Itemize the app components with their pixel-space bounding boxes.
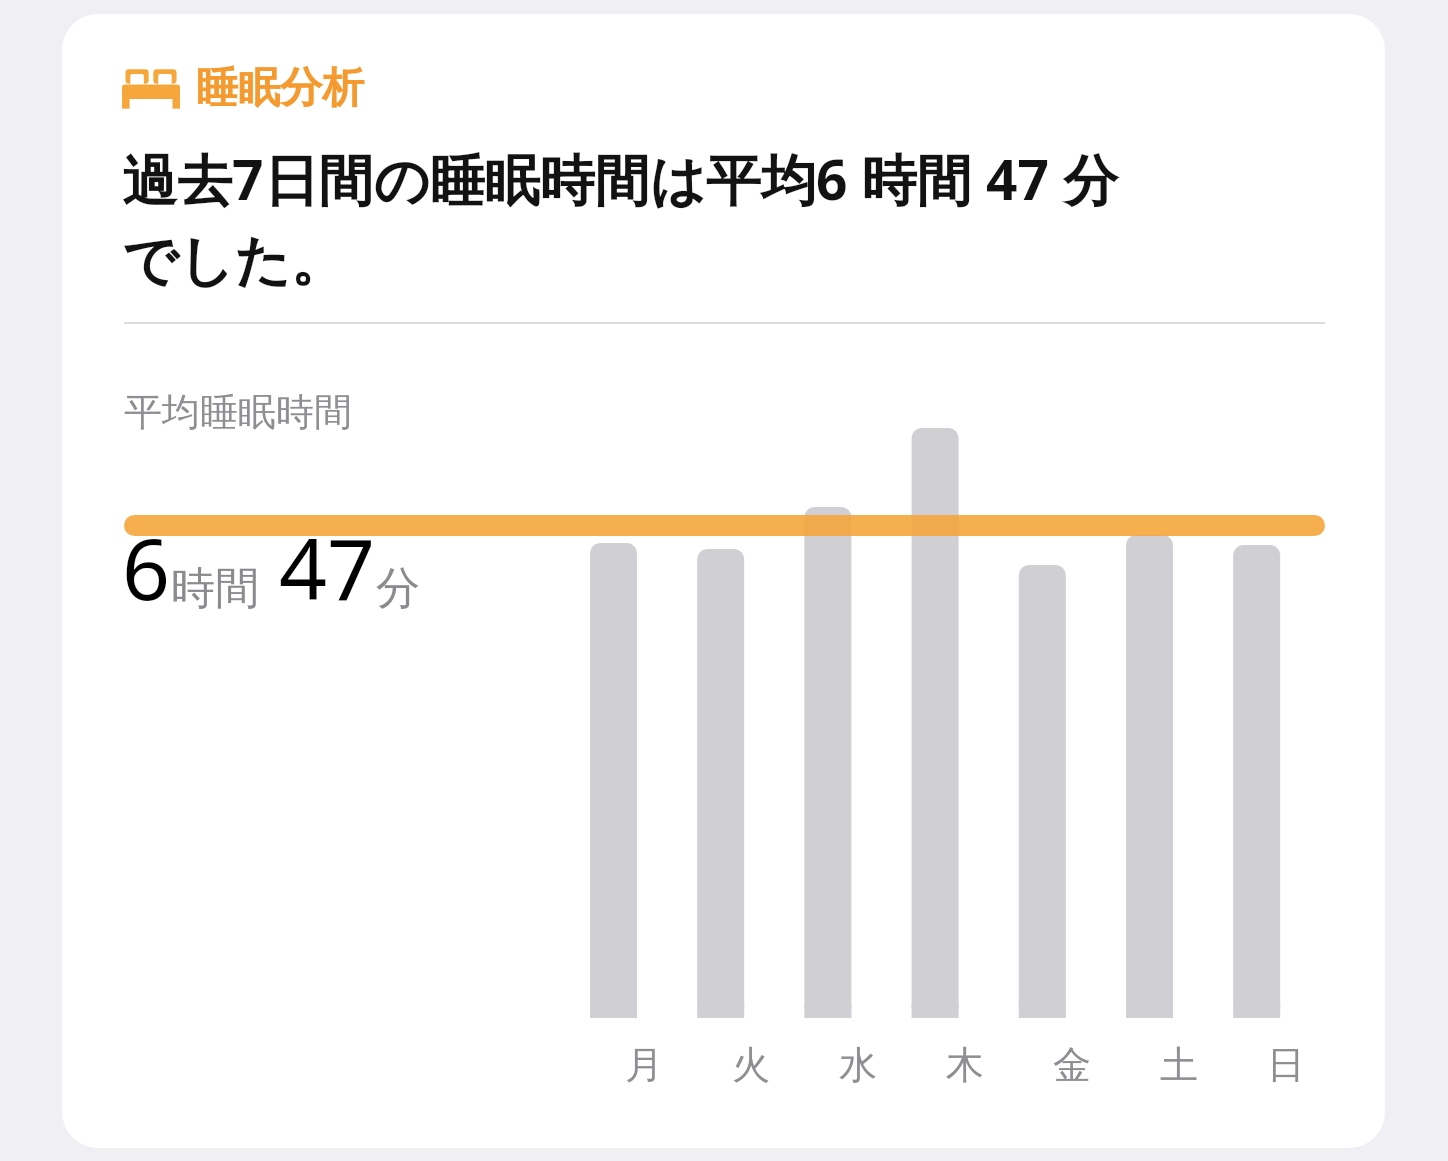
staticText: 日 — [1267, 1041, 1305, 1089]
staticText: 火 — [732, 1041, 770, 1089]
staticText: 水 — [839, 1041, 877, 1089]
staticText: 土 — [1160, 1041, 1198, 1089]
staticText: 月 — [625, 1041, 663, 1089]
staticText: 金 — [1053, 1041, 1091, 1089]
other: 睡眠 — [122, 67, 180, 111]
staticText: 6 — [122, 510, 171, 624]
button[interactable]: 睡眠 — [122, 62, 364, 115]
staticText: 平均睡眠時間 — [124, 388, 352, 436]
staticText: 時間 — [171, 561, 259, 616]
staticText: 木 — [946, 1041, 984, 1089]
staticText: 47 — [279, 510, 376, 624]
staticText: 分 — [376, 561, 420, 616]
staticText: 睡眠分析 — [196, 62, 364, 115]
staticText: 過去7日間の睡眠時間は平均6 時間 47 分 でした。 — [122, 141, 1119, 296]
button[interactable]: 睡眠 — [62, 14, 1385, 1148]
